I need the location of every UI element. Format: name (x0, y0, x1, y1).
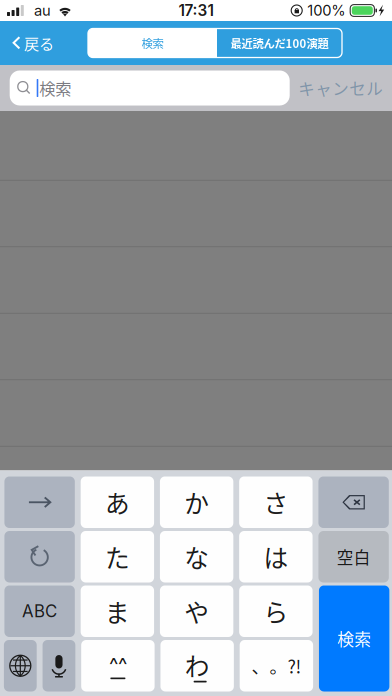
button[interactable]: 最近読んだ100演題 (217, 28, 342, 57)
staticText: 100% (307, 2, 345, 19)
staticText: か (184, 484, 209, 520)
staticText: さ (263, 484, 288, 520)
staticText: や (184, 593, 209, 629)
staticText: は (263, 539, 288, 575)
staticText: 17:31 (178, 1, 213, 20)
button[interactable]: や (160, 585, 233, 637)
button[interactable]: ABC (4, 585, 75, 637)
staticText: 検索 (39, 76, 71, 100)
staticText: 検索 (141, 35, 163, 51)
button[interactable]: 、。?! (240, 640, 313, 691)
staticText: あ (105, 484, 130, 520)
button[interactable]: 検索 (88, 28, 217, 57)
button[interactable] (4, 640, 37, 691)
button[interactable]: は (239, 531, 313, 582)
button[interactable]: さ (239, 476, 313, 528)
staticText: わ (185, 647, 210, 683)
button[interactable]: た (81, 531, 154, 582)
staticText: ABC (22, 601, 57, 621)
staticText: 最近読んだ100演題 (230, 35, 328, 51)
staticText: ら (263, 593, 288, 629)
staticText: 戻る (24, 32, 54, 54)
button[interactable]: ら (239, 585, 313, 637)
button[interactable] (4, 531, 75, 582)
staticText: 空白 (337, 545, 371, 569)
staticText: au (34, 2, 51, 19)
button[interactable]: キャンセル (298, 70, 383, 105)
button[interactable]: か (160, 476, 233, 528)
button[interactable]: 検索 (10, 70, 290, 105)
staticText: 、。?! (251, 653, 301, 679)
button[interactable]: 検索 (319, 585, 389, 691)
button[interactable]: 空白 (318, 531, 389, 582)
staticText: な (184, 539, 209, 575)
button[interactable]: わ (160, 640, 234, 691)
staticText: ま (105, 593, 130, 629)
button[interactable] (42, 640, 75, 691)
button[interactable]: 戻る (0, 21, 60, 65)
staticText: た (105, 539, 130, 575)
button[interactable] (318, 476, 389, 528)
button[interactable] (4, 476, 75, 528)
button[interactable]: な (160, 531, 233, 582)
staticText: ^^ (109, 652, 127, 676)
staticText: 検索 (337, 626, 371, 651)
staticText: キャンセル (298, 76, 383, 100)
button[interactable]: ^^ (81, 640, 155, 691)
button[interactable]: あ (81, 476, 154, 528)
button[interactable]: ま (81, 585, 154, 637)
